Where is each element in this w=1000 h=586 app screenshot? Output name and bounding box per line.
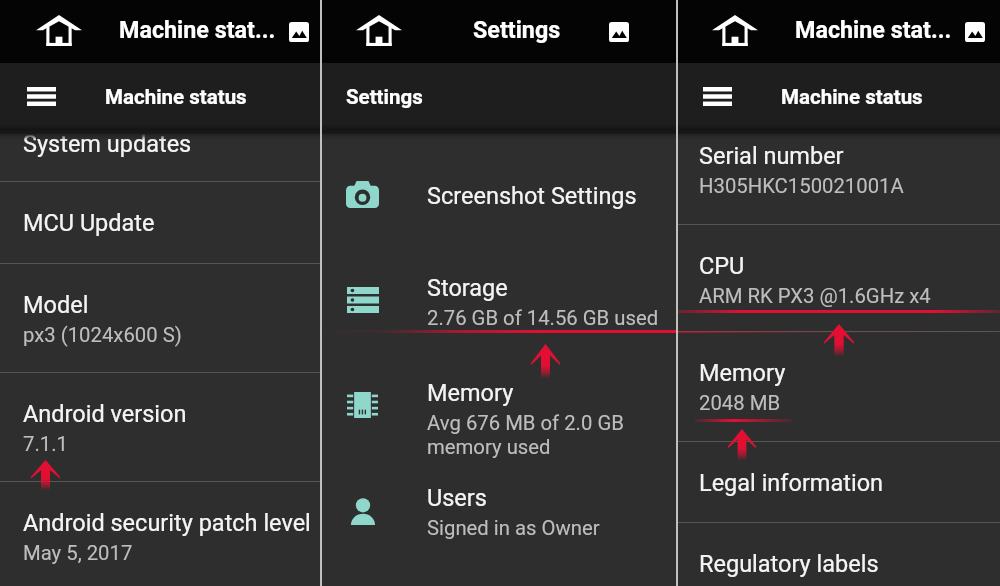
staticText: Android version (23, 400, 187, 428)
staticText: Settings (346, 85, 423, 109)
button[interactable]: Regulatory labels (676, 522, 1000, 586)
button[interactable]: Memory (320, 353, 676, 458)
staticText: Legal information (699, 469, 884, 497)
button[interactable]: Storage (320, 248, 676, 353)
staticText: Machine stat... (119, 16, 276, 43)
staticText: Signed in as Owner (427, 516, 600, 540)
staticText: CPU (699, 252, 745, 280)
button[interactable]: Screenshot gallery (956, 13, 994, 51)
staticText: Screenshot Settings (427, 182, 637, 210)
staticText: Machine stat... (795, 16, 952, 43)
button[interactable]: Android version (0, 372, 320, 481)
button[interactable]: Open navigation menu (19, 74, 63, 118)
button[interactable]: Home (30, 8, 88, 52)
staticText: Machine status (781, 85, 923, 109)
button[interactable]: Open navigation menu (695, 74, 739, 118)
staticText: Memory (427, 379, 514, 407)
button[interactable]: Home (706, 8, 764, 52)
staticText: Memory (699, 359, 786, 387)
button[interactable]: Home (350, 8, 408, 52)
staticText: 2048 MB (699, 391, 781, 415)
staticText: Android security patch level (23, 509, 311, 537)
button[interactable]: Screenshot gallery (280, 13, 318, 51)
staticText: Users (427, 484, 487, 512)
staticText: Model (23, 291, 89, 319)
staticText: Regulatory labels (699, 550, 879, 578)
staticText: Serial number (699, 142, 844, 170)
button[interactable]: MCU Update (0, 181, 320, 263)
staticText: Settings (473, 16, 561, 43)
button[interactable]: Android security patch level (0, 481, 320, 586)
staticText: Avg 676 MB of 2.0 GB memory used (427, 411, 624, 459)
staticText: H305HKC150021001A (699, 174, 904, 198)
staticText: 2.76 GB of 14.56 GB used (427, 306, 659, 330)
staticText: 7.1.1 (23, 432, 68, 456)
staticText: px3 (1024x600 S) (23, 323, 182, 347)
button[interactable]: Users (320, 458, 676, 563)
button[interactable]: Screenshot gallery (600, 13, 638, 51)
button[interactable]: Memory (676, 331, 1000, 441)
button[interactable]: System updates (0, 102, 320, 181)
staticText: System updates (23, 130, 192, 158)
staticText: Storage (427, 274, 508, 302)
button[interactable]: Screenshot Settings (320, 156, 676, 248)
button[interactable]: Legal information (676, 441, 1000, 522)
staticText: ARM RK PX3 @1.6GHz x4 (699, 284, 931, 308)
staticText: Machine status (105, 85, 247, 109)
button[interactable]: Serial number (676, 114, 1000, 224)
staticText: May 5, 2017 (23, 541, 133, 565)
button[interactable]: CPU (676, 224, 1000, 331)
button[interactable]: Model (0, 263, 320, 372)
staticText: MCU Update (23, 209, 155, 237)
